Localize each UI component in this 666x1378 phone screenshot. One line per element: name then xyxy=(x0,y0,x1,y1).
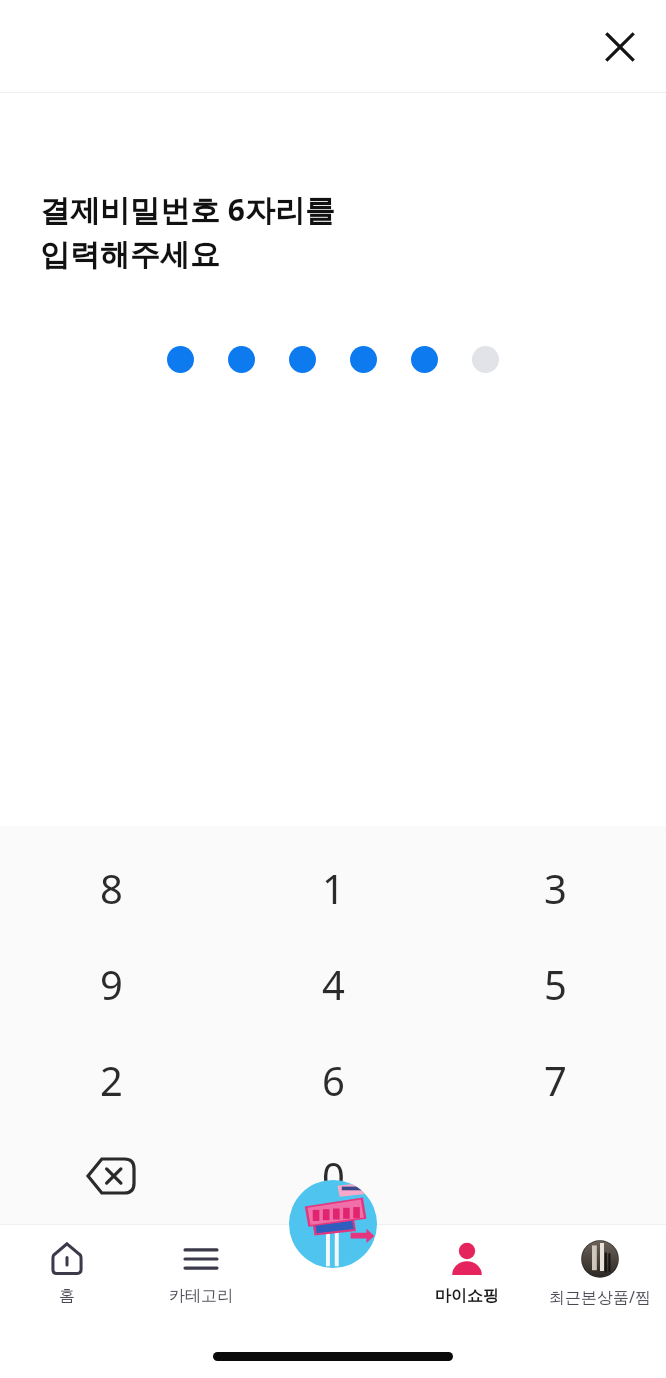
staticText: 8 xyxy=(100,861,123,915)
button[interactable]: 카테고리 xyxy=(134,1224,267,1334)
button[interactable]: Backspace xyxy=(0,1128,222,1224)
button[interactable]: 최근본상품/찜 xyxy=(533,1224,666,1334)
staticText: 최근본상품/찜 xyxy=(549,1286,651,1308)
button[interactable]: 5 xyxy=(444,936,666,1032)
button[interactable]: 판타지에스 이벤트 xyxy=(289,1180,377,1268)
staticText: 1 xyxy=(322,861,345,915)
staticText: 2 xyxy=(100,1053,123,1107)
staticText: 3 xyxy=(544,861,567,915)
staticText: 9 xyxy=(100,957,123,1011)
staticText: 카테고리 xyxy=(169,1286,233,1306)
staticText: 5 xyxy=(544,957,567,1011)
button[interactable]: 마이쇼핑 xyxy=(400,1224,533,1334)
button[interactable]: 4 xyxy=(222,936,444,1032)
button[interactable]: 3 xyxy=(444,840,666,936)
staticText: 0 xyxy=(322,1149,345,1203)
button[interactable]: Close xyxy=(584,11,656,83)
staticText: 마이쇼핑 xyxy=(435,1286,499,1306)
staticText: 7 xyxy=(544,1053,567,1107)
button[interactable]: 6 xyxy=(222,1032,444,1128)
button[interactable]: 0 xyxy=(222,1128,444,1224)
button[interactable]: 홈 xyxy=(0,1224,134,1334)
button[interactable]: 1 xyxy=(222,840,444,936)
button[interactable]: 2 xyxy=(0,1032,222,1128)
staticText: 4 xyxy=(322,957,345,1011)
staticText: 홈 xyxy=(59,1286,75,1306)
button[interactable]: 7 xyxy=(444,1032,666,1128)
staticText: 6 xyxy=(322,1053,345,1107)
button[interactable]: 9 xyxy=(0,936,222,1032)
button[interactable]: 8 xyxy=(0,840,222,936)
staticText: 결제비밀번호 6자리를 입력해주세요 xyxy=(40,189,335,274)
